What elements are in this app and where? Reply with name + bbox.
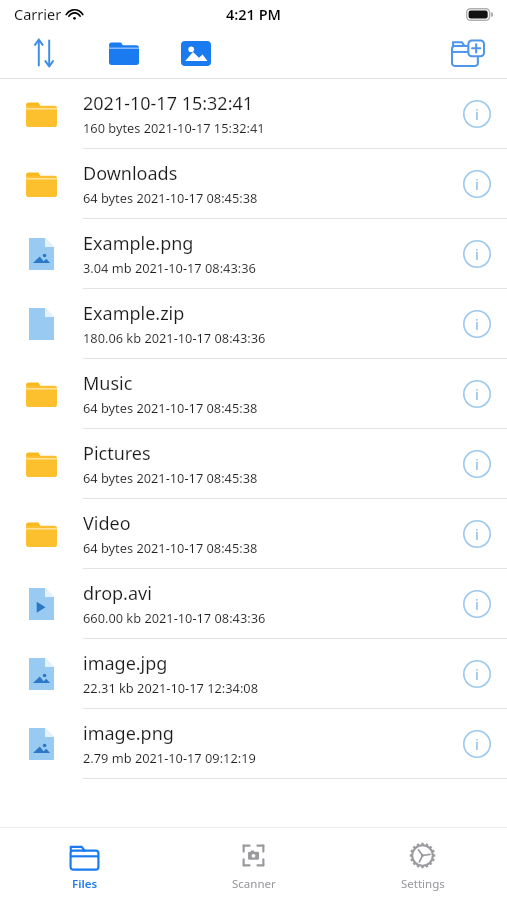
staticText: Downloads	[83, 161, 178, 186]
staticText: 4:21 PM	[226, 4, 282, 24]
staticText: 64 bytes 2021-10-17 08:45:38	[83, 539, 258, 556]
button[interactable]: Example.zip	[0, 289, 507, 358]
button[interactable]: Example.png	[0, 219, 507, 288]
staticText: 160 bytes 2021-10-17 15:32:41	[83, 119, 265, 136]
button[interactable]: Info about Example.png	[447, 219, 507, 288]
button[interactable]: 2021-10-17 15:32:41	[0, 79, 507, 148]
staticText: 3.04 mb 2021-10-17 08:43:36	[83, 259, 256, 276]
staticText: i	[475, 104, 479, 124]
staticText: i	[475, 384, 479, 404]
staticText: 64 bytes 2021-10-17 08:45:38	[83, 469, 258, 486]
button[interactable]: image.png	[0, 709, 507, 778]
staticText: i	[475, 664, 479, 684]
staticText: 2.79 mb 2021-10-17 09:12:19	[83, 749, 256, 766]
button[interactable]: Music	[0, 359, 507, 428]
staticText: i	[475, 174, 479, 194]
staticText: i	[475, 314, 479, 334]
staticText: 2021-10-17 15:32:41	[83, 91, 254, 116]
button[interactable]: Info about drop.avi	[447, 569, 507, 638]
button[interactable]: Info about Pictures	[447, 429, 507, 498]
button[interactable]: Settings	[338, 828, 507, 900]
staticText: Example.png	[83, 231, 194, 256]
button[interactable]: Downloads	[0, 149, 507, 218]
staticText: Music	[83, 371, 133, 396]
staticText: 22.31 kb 2021-10-17 12:34:08	[83, 679, 258, 696]
staticText: i	[475, 244, 479, 264]
staticText: Files	[72, 876, 98, 892]
staticText: Carrier	[14, 4, 62, 24]
staticText: image.png	[83, 721, 174, 746]
staticText: i	[475, 734, 479, 754]
button[interactable]: Files	[0, 828, 169, 900]
button[interactable]: image.jpg	[0, 639, 507, 708]
staticText: image.jpg	[83, 651, 168, 676]
button[interactable]: Photos	[160, 28, 232, 78]
button[interactable]: Info about Example.zip	[447, 289, 507, 358]
button[interactable]: Info about Music	[447, 359, 507, 428]
staticText: 64 bytes 2021-10-17 08:45:38	[83, 189, 258, 206]
button[interactable]: drop.avi	[0, 569, 507, 638]
button[interactable]: Info about image.png	[447, 709, 507, 778]
button[interactable]: Info about 2021-10-17 15:32:41	[447, 79, 507, 148]
staticText: drop.avi	[83, 581, 152, 606]
button[interactable]: New folder	[429, 28, 507, 78]
button[interactable]: Sort	[0, 28, 88, 78]
staticText: i	[475, 524, 479, 544]
button[interactable]: Info about Downloads	[447, 149, 507, 218]
button[interactable]: Pictures	[0, 429, 507, 498]
staticText: i	[475, 454, 479, 474]
staticText: Settings	[401, 876, 445, 892]
staticText: 660.00 kb 2021-10-17 08:43:36	[83, 609, 266, 626]
button[interactable]: Folders	[88, 28, 160, 78]
button[interactable]: Info about image.jpg	[447, 639, 507, 708]
staticText: 64 bytes 2021-10-17 08:45:38	[83, 399, 258, 416]
staticText: Video	[83, 511, 131, 536]
staticText: Example.zip	[83, 301, 185, 326]
button[interactable]: Scanner	[169, 828, 338, 900]
staticText: 180.06 kb 2021-10-17 08:43:36	[83, 329, 266, 346]
button[interactable]: Info about Video	[447, 499, 507, 568]
staticText: Scanner	[232, 876, 276, 892]
staticText: Pictures	[83, 441, 151, 466]
button[interactable]: Video	[0, 499, 507, 568]
staticText: i	[475, 594, 479, 614]
